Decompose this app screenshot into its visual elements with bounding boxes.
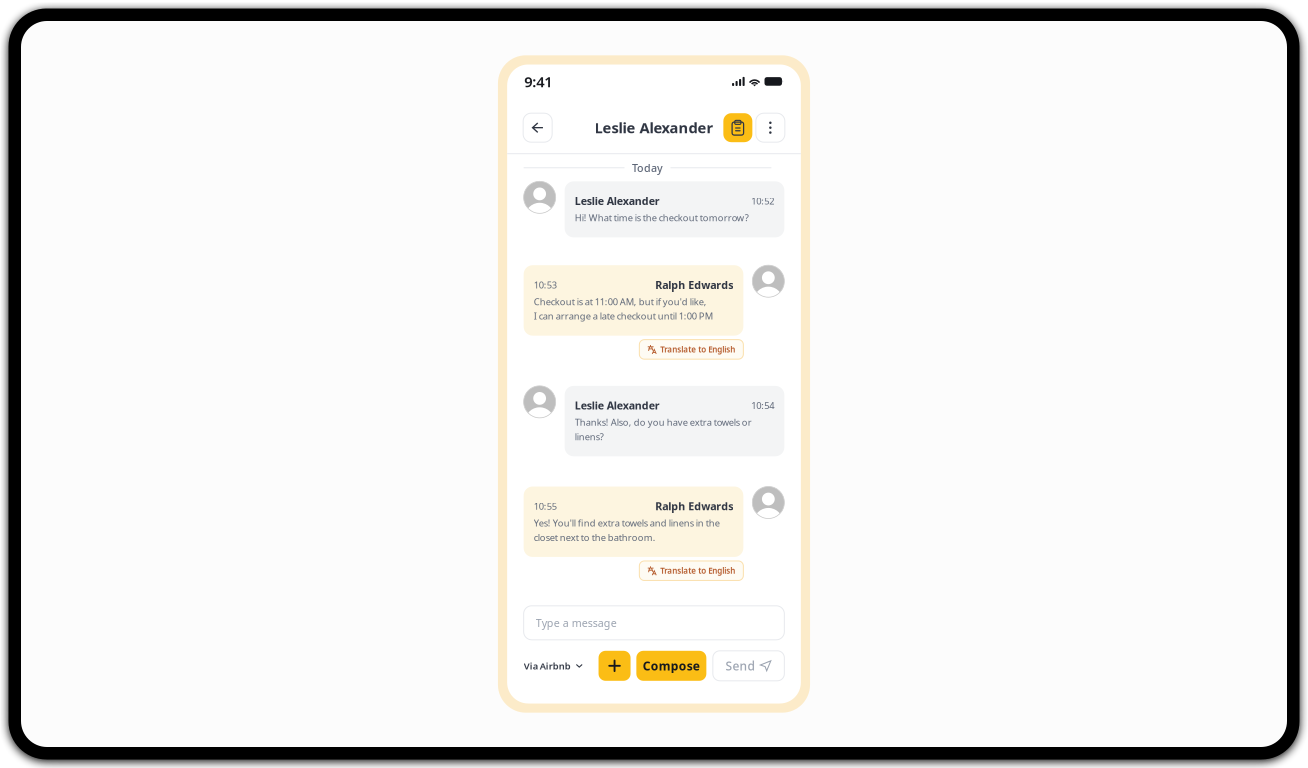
button[interactable]: Translate to English bbox=[639, 561, 743, 580]
staticText: Translate to English bbox=[660, 565, 735, 576]
staticText: Leslie Alexander bbox=[594, 118, 713, 137]
staticText: Compose bbox=[643, 658, 700, 674]
staticText: 9:41 bbox=[524, 72, 552, 91]
staticText: 10:54 bbox=[751, 399, 774, 412]
button[interactable]: Type a message bbox=[524, 606, 784, 640]
button[interactable]: Compose bbox=[636, 651, 706, 681]
staticText: closet next to the bathroom. bbox=[534, 531, 656, 543]
staticText: Ralph Edwards bbox=[655, 278, 733, 292]
staticText: Checkout is at 11:00 AM, but if you'd li… bbox=[534, 295, 707, 308]
button[interactable]: Add attachment bbox=[599, 651, 631, 681]
button[interactable]: Via Airbnb bbox=[524, 654, 583, 678]
staticText: Send bbox=[726, 658, 755, 674]
staticText: Yes! You'll find extra towels and linens… bbox=[534, 517, 720, 529]
staticText: Leslie Alexander bbox=[575, 194, 660, 208]
staticText: 10:53 bbox=[534, 279, 557, 291]
staticText: Thanks! Also, do you have extra towels o… bbox=[575, 416, 752, 428]
staticText: I can arrange a late checkout until 1:00… bbox=[534, 310, 713, 322]
staticText: Ralph Edwards bbox=[655, 499, 733, 513]
staticText: linens? bbox=[575, 430, 604, 443]
staticText: 10:52 bbox=[751, 195, 774, 207]
staticText: Hi! What time is the checkout tomorrow? bbox=[575, 211, 749, 224]
staticText: Today bbox=[632, 161, 663, 175]
staticText: Leslie Alexander bbox=[575, 398, 660, 413]
staticText: Translate to English bbox=[660, 344, 735, 355]
staticText: Type a message bbox=[536, 616, 617, 630]
button[interactable]: Back bbox=[523, 113, 552, 142]
staticText: Via Airbnb bbox=[524, 660, 571, 672]
button[interactable]: Send bbox=[713, 651, 784, 681]
button[interactable]: More options bbox=[756, 113, 785, 142]
button[interactable]: Reservation details bbox=[723, 113, 752, 142]
staticText: 10:55 bbox=[534, 500, 557, 512]
button[interactable]: Translate to English bbox=[639, 340, 743, 359]
